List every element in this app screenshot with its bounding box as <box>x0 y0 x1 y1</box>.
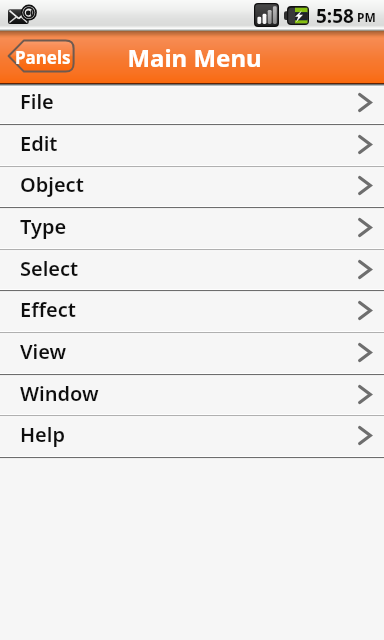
staticText: Type <box>20 213 67 240</box>
staticText: Effect <box>20 296 76 323</box>
staticText: Select <box>20 255 79 282</box>
staticText: Window <box>20 380 99 407</box>
button[interactable]: Panels <box>6 39 75 73</box>
button[interactable]: Help <box>0 416 384 458</box>
button[interactable]: Select <box>0 250 384 292</box>
other: New email <box>8 5 36 24</box>
other: Signal strength <box>254 3 279 27</box>
button[interactable]: File <box>0 83 384 125</box>
button[interactable]: Effect <box>0 291 384 333</box>
staticText: View <box>20 338 67 365</box>
staticText: Edit <box>20 130 58 157</box>
staticText: PM <box>357 9 376 25</box>
other: Battery charging <box>284 6 309 25</box>
button[interactable]: View <box>0 333 384 375</box>
staticText: File <box>20 88 54 115</box>
staticText: Main Menu <box>127 41 262 74</box>
staticText: Help <box>20 421 65 448</box>
button[interactable]: Window <box>0 375 384 417</box>
button[interactable]: Type <box>0 208 384 250</box>
staticText: Panels <box>15 46 71 69</box>
button[interactable]: Edit <box>0 125 384 167</box>
button[interactable]: Object <box>0 166 384 208</box>
staticText: Object <box>20 171 84 198</box>
staticText: 5:58 <box>316 3 354 29</box>
